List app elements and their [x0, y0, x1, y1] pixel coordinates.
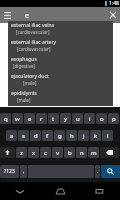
staticText: u [76, 115, 80, 123]
button[interactable]: i [84, 113, 95, 124]
button[interactable]: Recent apps [80, 182, 120, 200]
button[interactable]: ?123 [0, 165, 19, 178]
button[interactable]: d [30, 130, 41, 141]
staticText: i [89, 115, 91, 123]
button[interactable]: u [72, 113, 83, 124]
staticText: d [34, 132, 38, 140]
staticText: 1:48 [109, 0, 119, 7]
staticText: , [23, 168, 25, 175]
button[interactable]: o [96, 113, 107, 124]
staticText: p [112, 115, 116, 123]
button[interactable]: y [60, 113, 71, 124]
button[interactable]: Shift [0, 147, 15, 158]
button[interactable]: x [28, 147, 39, 158]
button[interactable]: z [16, 147, 27, 158]
staticText: a [10, 132, 14, 140]
staticText: f [46, 132, 49, 140]
staticText: [digestive] [13, 63, 35, 69]
button[interactable]: Clear search [106, 7, 120, 23]
staticText: y [64, 115, 68, 123]
staticText: c [44, 149, 47, 157]
staticText: k [94, 132, 98, 140]
button[interactable]: w [12, 113, 23, 124]
button[interactable]: Menu [0, 7, 14, 23]
button[interactable]: external iliac artery [8, 38, 113, 55]
staticText: x [32, 149, 36, 157]
staticText: external iliac veins [11, 22, 55, 29]
button[interactable]: ejaculatory duct [8, 72, 113, 89]
button[interactable]: Search [101, 165, 120, 178]
staticText: [cardiovascular] [17, 46, 51, 52]
staticText: j [83, 132, 85, 140]
staticText: external iliac artery [11, 39, 57, 46]
button[interactable]: e [24, 113, 35, 124]
button[interactable]: t [48, 113, 59, 124]
button[interactable]: , [20, 165, 27, 178]
staticText: ejaculatory duct [11, 73, 49, 80]
staticText: ?123 [4, 168, 15, 175]
staticText: [male] [17, 97, 31, 103]
button[interactable]: s [18, 130, 29, 141]
button[interactable]: external iliac veins [8, 21, 113, 38]
button[interactable]: Hide keyboard [0, 182, 40, 200]
staticText: z [20, 149, 23, 157]
staticText: g [58, 132, 62, 140]
button[interactable]: g [54, 130, 65, 141]
button[interactable]: Home [40, 182, 80, 200]
button[interactable]: esophagus [8, 55, 113, 72]
button[interactable]: k [90, 130, 101, 141]
staticText: o [100, 115, 104, 123]
staticText: [male] [23, 80, 37, 86]
staticText: w [15, 115, 20, 123]
button[interactable]: v [52, 147, 63, 158]
button[interactable]: . [95, 165, 100, 178]
button[interactable]: h [66, 130, 77, 141]
staticText: . [97, 168, 99, 175]
staticText: [cardiovascular] [16, 29, 50, 35]
button[interactable]: c [40, 147, 51, 158]
button[interactable]: r [36, 113, 47, 124]
staticText: h [70, 132, 74, 140]
button[interactable]: b [64, 147, 75, 158]
staticText: r [40, 115, 43, 123]
staticText: e [28, 115, 32, 123]
button[interactable]: epididymis [8, 89, 113, 106]
button[interactable]: a [6, 130, 17, 141]
button[interactable]: f [42, 130, 53, 141]
staticText: b [68, 149, 72, 157]
staticText: l [107, 132, 109, 140]
staticText: esophagus [11, 56, 37, 63]
button[interactable]: q [0, 113, 11, 124]
staticText: v [56, 149, 60, 157]
staticText: s [22, 132, 25, 140]
staticText: e [25, 11, 29, 21]
button[interactable]: l [102, 130, 113, 141]
button[interactable]: j [78, 130, 89, 141]
staticText: q [4, 115, 8, 123]
button[interactable]: n [76, 147, 87, 158]
button[interactable]: p [108, 113, 119, 124]
button[interactable]: Backspace [100, 147, 119, 158]
staticText: t [52, 115, 55, 123]
staticText: n [80, 149, 84, 157]
staticText: m [91, 149, 97, 157]
staticText: epididymis [11, 90, 37, 97]
button[interactable]: m [88, 147, 99, 158]
